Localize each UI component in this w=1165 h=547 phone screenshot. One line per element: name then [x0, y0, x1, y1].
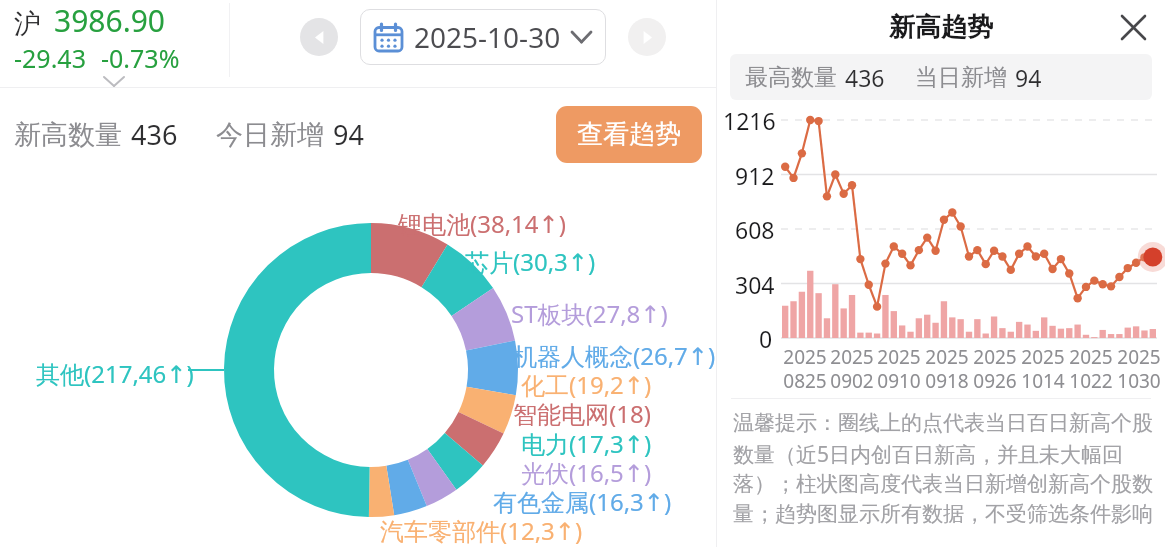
staticText: 2025 1022 — [1069, 344, 1113, 393]
staticText: 2025 1030 — [1117, 344, 1161, 393]
button[interactable]: 查看趋势 — [556, 106, 702, 163]
staticText: 当日新增 — [915, 63, 1007, 92]
staticText: ST板块(27,8↑) — [511, 297, 668, 330]
button[interactable]: 2025-10-30 — [360, 9, 606, 65]
staticText: 436 — [845, 62, 885, 93]
staticText: 锂电池(38,14↑) — [398, 207, 566, 240]
staticText: 光伏(16,5↑) — [521, 456, 652, 489]
staticText: 化工(19,2↑) — [521, 368, 652, 401]
staticText: 温馨提示：圈线上的点代表当日百日新高个股数量（近5日内创百日新高，并且未大幅回落… — [733, 410, 1155, 528]
staticText: 其他(217,46↑) — [36, 357, 194, 390]
staticText: 新高趋势 — [889, 11, 993, 44]
staticText: 0 — [759, 323, 773, 354]
staticText: 94 — [1015, 62, 1042, 93]
staticText: 智能电网(18) — [513, 397, 651, 430]
staticText: 2025 0918 — [925, 344, 969, 393]
staticText: 最高数量 — [745, 63, 837, 92]
staticText: 436 — [131, 116, 178, 153]
staticText: 2025 1014 — [1021, 344, 1065, 393]
staticText: 新高数量 — [14, 118, 122, 152]
staticText: 2025 0910 — [877, 344, 921, 393]
staticText: -29.43 — [14, 41, 86, 75]
button[interactable]: Close — [1115, 9, 1151, 45]
staticText: 3986.90 — [54, 0, 165, 41]
button[interactable]: 沪 — [14, 0, 214, 87]
staticText: 今日新增 — [216, 118, 324, 152]
button[interactable]: Previous day — [300, 18, 338, 56]
staticText: 94 — [333, 116, 364, 153]
staticText: 芯片(30,3↑) — [465, 245, 596, 278]
staticText: 电力(17,3↑) — [521, 427, 652, 460]
staticText: 2025 0926 — [973, 344, 1017, 393]
button[interactable]: 最高数量 — [730, 54, 1152, 100]
staticText: 汽车零部件(12,3↑) — [380, 514, 583, 547]
staticText: 查看趋势 — [577, 118, 681, 151]
staticText: 机器人概念(26,7↑) — [513, 339, 716, 372]
staticText: 304 — [735, 269, 775, 300]
button[interactable]: Next day — [628, 18, 666, 56]
staticText: 2025 0902 — [830, 344, 874, 393]
staticText: 有色金属(16,3↑) — [493, 485, 672, 518]
staticText: 912 — [735, 160, 775, 191]
staticText: 608 — [735, 214, 775, 245]
staticText: 2025 0825 — [783, 344, 827, 393]
staticText: 沪 — [14, 7, 41, 41]
staticText: 2025-10-30 — [414, 18, 561, 56]
staticText: 1216 — [723, 105, 776, 136]
staticText: -0.73% — [101, 41, 180, 75]
